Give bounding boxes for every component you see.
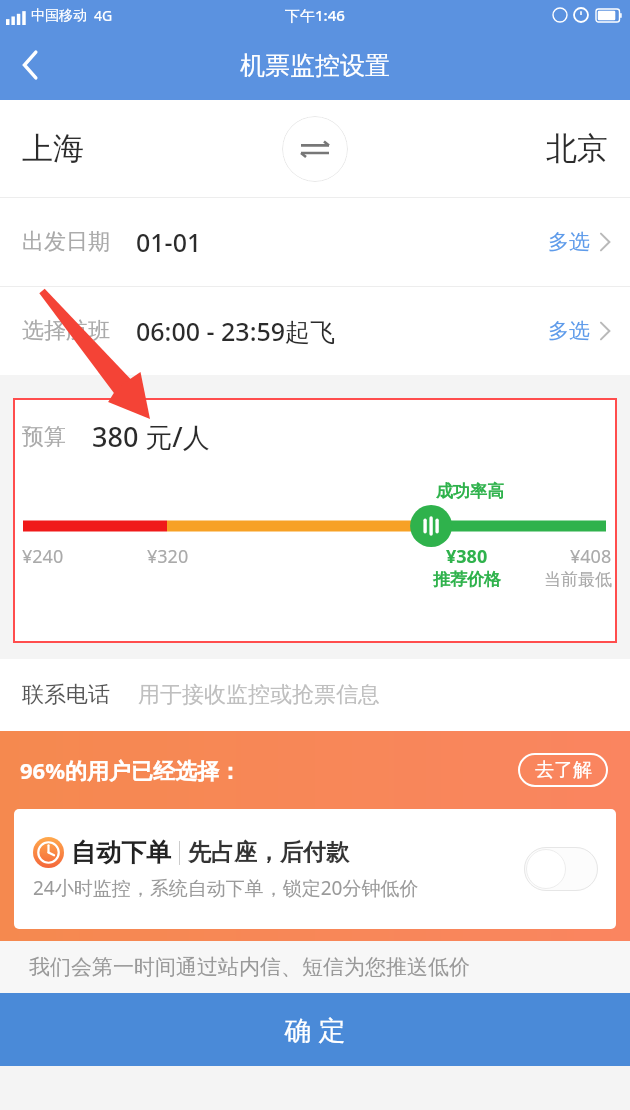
staticText: 380 元/人: [92, 418, 210, 455]
staticText: 用于接收监控或抢票信息: [138, 681, 380, 709]
staticText: 先占座，后付款: [188, 838, 349, 867]
staticText: ¥408: [570, 544, 612, 569]
staticText: 选择航班: [22, 317, 110, 345]
button[interactable]: 北京: [546, 129, 608, 168]
button[interactable]: 自动下单: [14, 809, 616, 929]
staticText: 下午1:46: [285, 5, 345, 25]
staticText: 自动下单: [71, 837, 171, 868]
staticText: 去了解: [535, 758, 592, 782]
staticText: 多选: [548, 318, 590, 344]
button[interactable]: 联系电话: [0, 659, 630, 731]
staticText: 出发日期: [22, 228, 110, 256]
staticText: ¥380: [446, 544, 488, 569]
staticText: 当前最低: [544, 569, 612, 590]
staticText: 确 定: [284, 1011, 346, 1048]
staticText: 96%的用户已经选择：: [20, 755, 518, 785]
button[interactable]: 出发日期: [0, 198, 630, 286]
staticText: ¥240: [22, 544, 64, 569]
staticText: 机票监控设置: [240, 50, 390, 81]
button[interactable]: 确 定: [0, 993, 630, 1066]
staticText: 我们会第一时间通过站内信、短信为您推送低价: [29, 954, 470, 980]
staticText: 中国移动: [31, 7, 87, 25]
staticText: 成功率高: [436, 481, 504, 502]
button[interactable]: Back: [0, 34, 62, 96]
staticText: 推荐价格: [433, 569, 501, 590]
staticText: 联系电话: [22, 681, 110, 709]
button[interactable]: Auto order toggle: [524, 847, 598, 891]
staticText: 预算: [22, 423, 66, 451]
staticText: 06:00 - 23:59起飞: [136, 314, 548, 348]
staticText: 4G: [94, 6, 113, 25]
button[interactable]: 预算: [22, 418, 617, 455]
staticText: 24小时监控，系统自动下单，锁定20分钟低价: [33, 875, 419, 901]
staticText: 多选: [548, 229, 590, 255]
staticText: 01-01: [136, 225, 548, 259]
staticText: ¥320: [147, 544, 189, 569]
button[interactable]: 上海: [22, 129, 84, 168]
button[interactable]: 选择航班: [0, 287, 630, 375]
button[interactable]: 去了解: [518, 753, 608, 787]
button[interactable]: Swap cities: [282, 116, 348, 182]
